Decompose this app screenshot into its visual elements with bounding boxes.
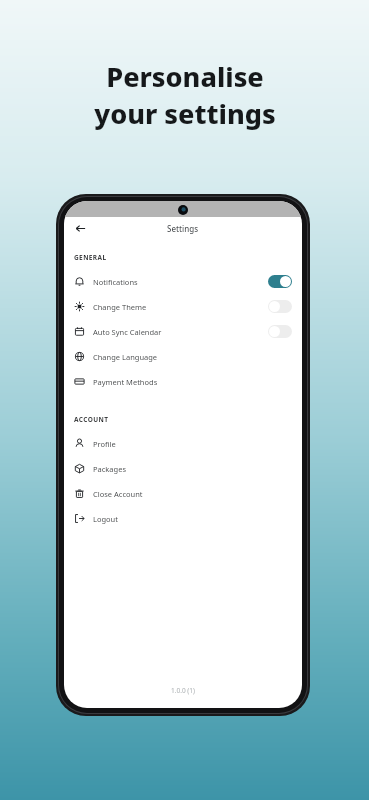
button[interactable]: Toggle on [268, 275, 292, 288]
button[interactable]: Notifications [64, 269, 302, 294]
button[interactable]: Change Language [64, 344, 302, 369]
button[interactable]: Toggle off [268, 300, 292, 313]
staticText: Notifications [93, 277, 138, 287]
staticText: Settings [167, 223, 199, 234]
button[interactable]: Packages [64, 456, 302, 481]
button[interactable]: Logout [64, 506, 302, 531]
staticText: ACCOUNT [74, 415, 109, 424]
staticText: Close Account [93, 489, 143, 499]
button[interactable]: Back [70, 218, 90, 238]
staticText: Packages [93, 464, 126, 474]
button[interactable]: Auto Sync Calendar [64, 319, 302, 344]
button[interactable]: Profile [64, 431, 302, 456]
staticText: Auto Sync Calendar [93, 327, 162, 337]
staticText: Profile [93, 439, 116, 449]
button[interactable]: Change Theme [64, 294, 302, 319]
staticText: Payment Methods [93, 377, 158, 387]
button[interactable]: Toggle off [268, 325, 292, 338]
button[interactable]: Payment Methods [64, 369, 302, 394]
staticText: 1.0.0 (1) [171, 686, 195, 695]
staticText: Personalise [106, 58, 264, 95]
staticText: GENERAL [74, 253, 107, 262]
button[interactable]: Close Account [64, 481, 302, 506]
staticText: Change Language [93, 352, 158, 362]
staticText: your settings [94, 95, 276, 132]
staticText: Logout [93, 514, 118, 524]
staticText: Change Theme [93, 302, 147, 312]
